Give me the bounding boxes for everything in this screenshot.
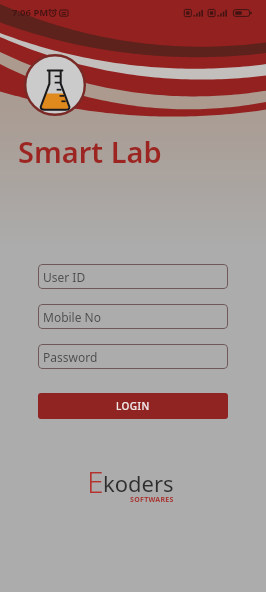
button[interactable]: Mobile No — [38, 304, 228, 329]
staticText: koders — [103, 468, 174, 498]
staticText: Mobile No — [43, 309, 101, 325]
staticText: 7:06 PM — [12, 6, 49, 19]
button[interactable]: User ID — [38, 264, 228, 289]
staticText: User ID — [43, 269, 86, 285]
staticText: LOGIN — [116, 399, 150, 413]
button[interactable]: Password — [38, 344, 228, 369]
staticText: Smart Lab — [18, 132, 162, 171]
staticText: E — [87, 461, 104, 502]
staticText: Password — [43, 349, 98, 365]
staticText: SOFTWARES — [130, 495, 174, 505]
button[interactable]: LOGIN — [38, 393, 228, 419]
